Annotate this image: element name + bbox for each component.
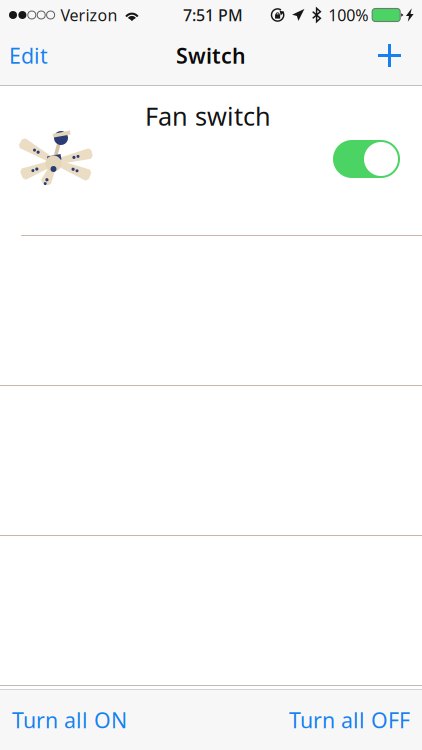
button[interactable]: Add switch: [362, 33, 422, 81]
staticText: Fan switch: [145, 99, 271, 133]
staticText: Edit: [9, 41, 48, 70]
button[interactable]: Turn all ON: [0, 690, 145, 749]
button[interactable]: Fan switch: [333, 140, 400, 178]
staticText: Turn all OFF: [289, 706, 410, 734]
staticText: 7:51 PM: [183, 4, 243, 26]
button[interactable]: Edit: [0, 33, 64, 81]
staticText: Switch: [176, 41, 246, 70]
button[interactable]: Turn all OFF: [271, 690, 422, 749]
staticText: Turn all ON: [12, 706, 127, 734]
staticText: Verizon: [61, 4, 118, 26]
staticText: 100%: [328, 4, 368, 26]
